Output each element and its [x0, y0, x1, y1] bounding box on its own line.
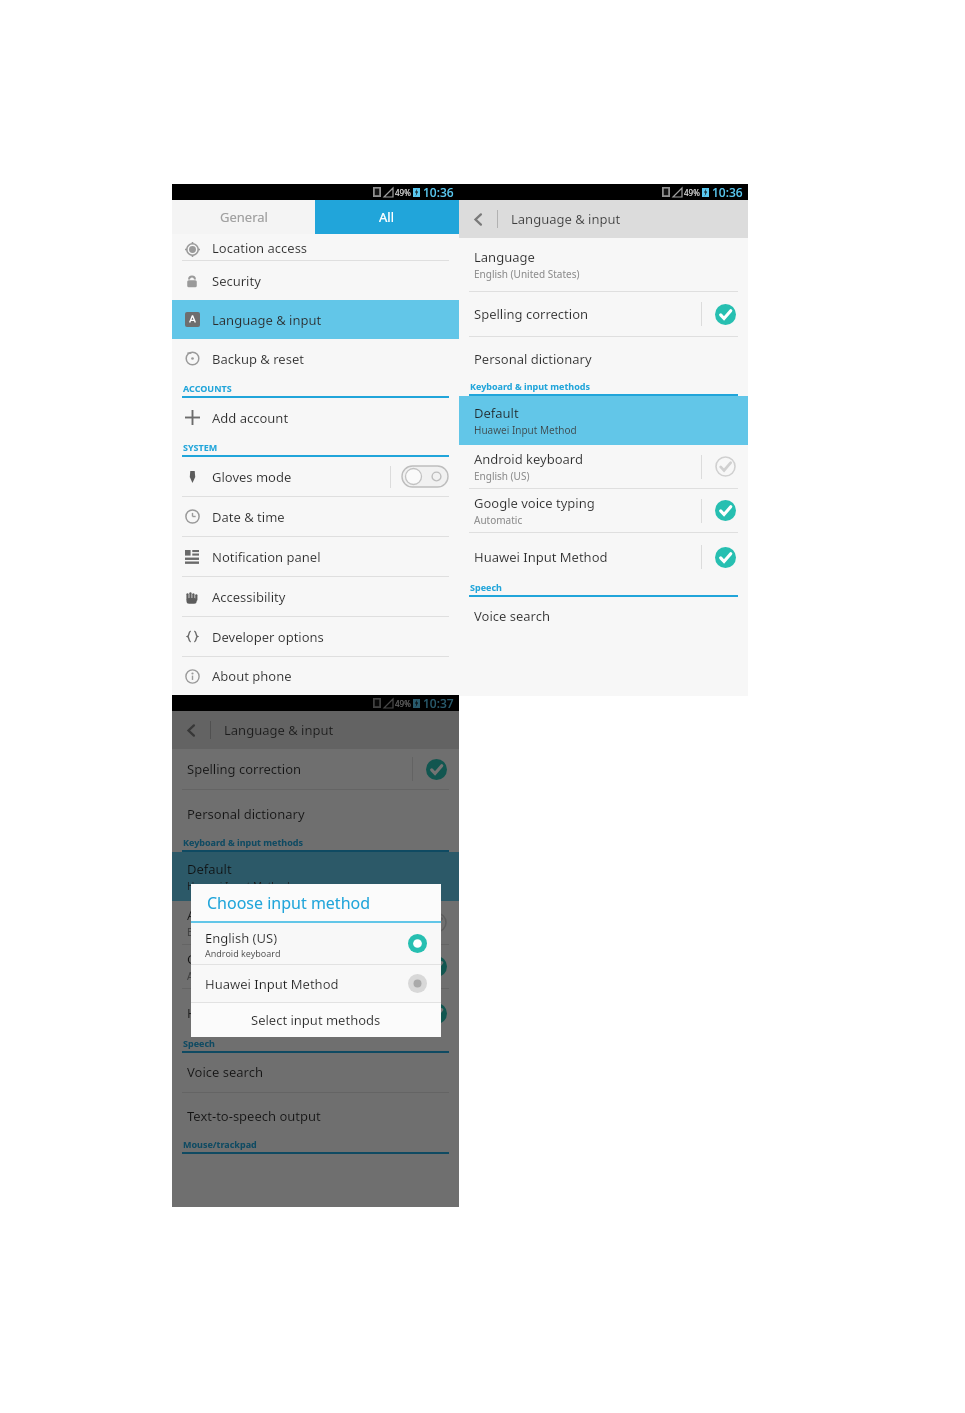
- staticText: ACCOUNTS: [183, 382, 232, 394]
- staticText: Speech: [470, 581, 502, 593]
- staticText: Default: [187, 860, 232, 878]
- button[interactable]: Gloves mode: [172, 457, 459, 496]
- staticText: Language: [474, 248, 535, 266]
- staticText: Keyboard & input methods: [470, 380, 591, 392]
- button[interactable]: Huawei Input Method: [459, 537, 748, 577]
- staticText: Security: [212, 272, 261, 290]
- staticText: Automatic: [187, 969, 236, 983]
- staticText: Huawei Input Method: [474, 548, 608, 566]
- staticText: Personal dictionary: [187, 805, 305, 823]
- staticText: Gloves mode: [212, 468, 390, 486]
- staticText: 49%: [684, 187, 700, 198]
- button[interactable]: Language: [459, 238, 748, 291]
- button[interactable]: Huawei Input Method: [172, 993, 459, 1033]
- button[interactable]: All: [315, 200, 459, 234]
- staticText: 10:36: [423, 184, 454, 200]
- button[interactable]: Language & input: [172, 300, 459, 339]
- button[interactable]: Text-to-speech output: [172, 1100, 459, 1134]
- staticText: Choose input method: [207, 892, 371, 914]
- button[interactable]: Back: [459, 200, 497, 238]
- button[interactable]: Spelling correction: [172, 749, 459, 789]
- staticText: Developer options: [212, 628, 324, 646]
- staticText: Huawei Input Method: [187, 1004, 321, 1022]
- staticText: Spelling correction: [474, 305, 589, 323]
- staticText: Backup & reset: [212, 350, 304, 368]
- staticText: 10:36: [712, 184, 743, 200]
- button[interactable]: Security: [172, 261, 459, 300]
- staticText: Android keyboard: [205, 947, 281, 959]
- button[interactable]: Accessibility: [172, 577, 459, 616]
- staticText: English (US): [205, 929, 278, 947]
- staticText: Google voice typing: [474, 494, 595, 512]
- button[interactable]: General: [172, 200, 315, 234]
- button[interactable]: Huawei Input Method: [191, 965, 441, 1002]
- staticText: 49%: [395, 187, 411, 198]
- button[interactable]: Android keyboard: [459, 445, 748, 488]
- button[interactable]: Google voice typing: [172, 945, 459, 988]
- staticText: Location access: [212, 239, 308, 257]
- staticText: Date & time: [212, 508, 285, 526]
- staticText: Notification panel: [212, 548, 321, 566]
- button[interactable]: Location access: [172, 234, 459, 260]
- button[interactable]: Android keyboard: [172, 901, 459, 944]
- staticText: Personal dictionary: [474, 350, 592, 368]
- staticText: Automatic: [474, 513, 523, 527]
- button[interactable]: Notification panel: [172, 537, 459, 576]
- button[interactable]: Developer options: [172, 617, 459, 656]
- staticText: Language & input: [224, 721, 334, 739]
- staticText: English (US): [474, 469, 530, 483]
- staticText: 49%: [395, 698, 411, 709]
- button[interactable]: Spelling correction: [459, 292, 748, 336]
- staticText: Default: [474, 404, 519, 422]
- staticText: Keyboard & input methods: [183, 836, 304, 848]
- staticText: English (US): [187, 925, 243, 939]
- staticText: 10:37: [423, 695, 454, 711]
- staticText: Huawei Input Method: [187, 879, 290, 893]
- button[interactable]: Date & time: [172, 497, 459, 536]
- staticText: Language & input: [212, 311, 322, 329]
- button[interactable]: Back: [172, 711, 210, 749]
- staticText: Huawei Input Method: [205, 975, 393, 993]
- staticText: Language & input: [511, 210, 621, 228]
- staticText: Android keyboard: [187, 906, 296, 924]
- staticText: Mouse/trackpad: [183, 1138, 257, 1150]
- button[interactable]: Voice search: [459, 597, 748, 635]
- button[interactable]: English (US): [191, 923, 441, 964]
- staticText: Spelling correction: [187, 760, 302, 778]
- staticText: General: [220, 208, 268, 226]
- button[interactable]: Google voice typing: [459, 489, 748, 532]
- button[interactable]: Personal dictionary: [459, 344, 748, 376]
- staticText: About phone: [212, 667, 292, 685]
- staticText: Speech: [183, 1037, 215, 1049]
- staticText: English (United States): [474, 267, 580, 281]
- button[interactable]: Personal dictionary: [172, 798, 459, 832]
- button[interactable]: Select input methods: [191, 1003, 441, 1037]
- staticText: SYSTEM: [183, 441, 218, 453]
- staticText: Google voice typing: [187, 950, 308, 968]
- staticText: Voice search: [187, 1063, 263, 1081]
- staticText: Huawei Input Method: [474, 423, 577, 437]
- staticText: Select input methods: [251, 1011, 381, 1029]
- staticText: Accessibility: [212, 588, 286, 606]
- button[interactable]: Voice search: [172, 1053, 459, 1092]
- staticText: Add account: [212, 409, 289, 427]
- staticText: All: [379, 208, 395, 226]
- button[interactable]: Default: [172, 852, 459, 901]
- button[interactable]: Add account: [172, 398, 459, 437]
- button[interactable]: Default: [459, 396, 748, 445]
- button[interactable]: Backup & reset: [172, 339, 459, 378]
- staticText: Text-to-speech output: [187, 1107, 321, 1125]
- staticText: Android keyboard: [474, 450, 583, 468]
- staticText: Voice search: [474, 607, 550, 625]
- button[interactable]: About phone: [172, 657, 459, 695]
